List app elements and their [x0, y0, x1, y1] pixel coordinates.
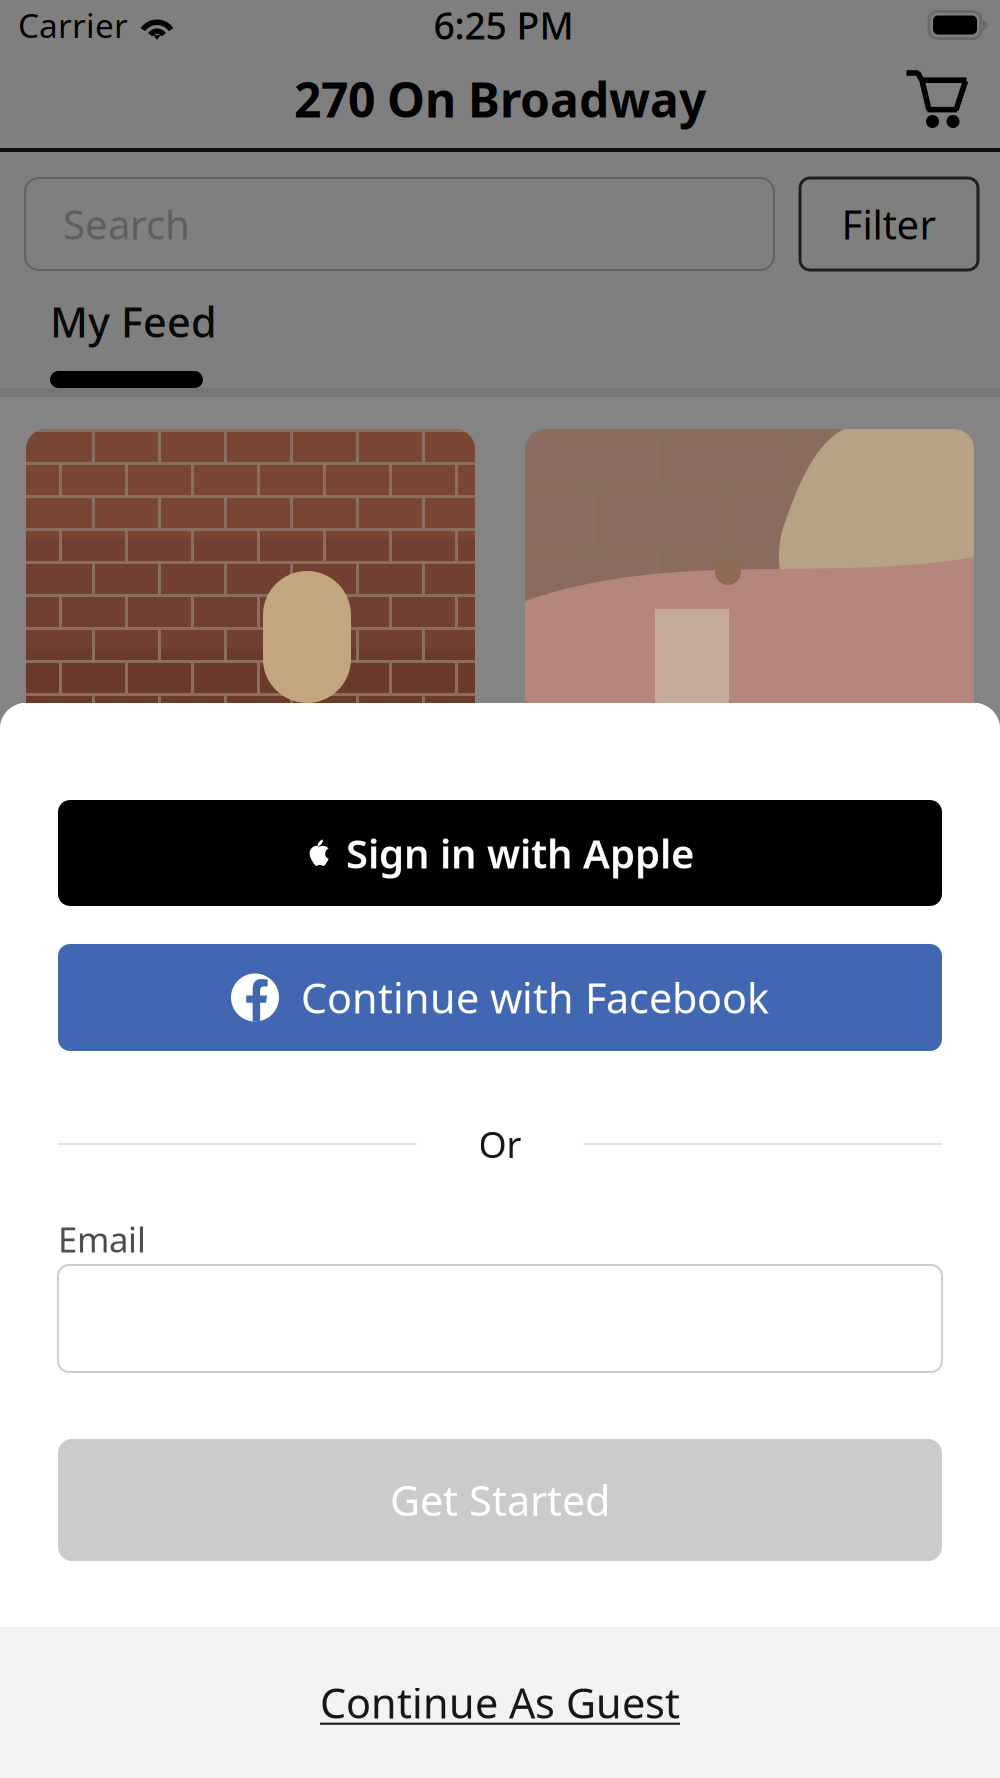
staticText: Filter: [841, 197, 936, 250]
staticText: Or: [478, 1120, 521, 1168]
staticText: 270 On Broadway: [294, 67, 706, 131]
staticText: Get Started: [390, 1473, 610, 1527]
staticText: Continue with Facebook: [301, 970, 769, 1025]
staticText: 6:25 PM: [433, 0, 573, 50]
staticText: Email: [58, 1216, 146, 1262]
staticText: Search: [63, 197, 190, 250]
staticText: Carrier: [18, 3, 128, 47]
staticText: Continue As Guest: [320, 1675, 680, 1730]
staticText: Sign in with Apple: [346, 826, 694, 879]
button[interactable]: Continue As Guest: [0, 1627, 1000, 1778]
button[interactable]: Continue with Facebook: [58, 944, 942, 1051]
staticText: My Feed: [50, 294, 217, 349]
button[interactable]: Sign in with Apple: [58, 800, 942, 906]
button[interactable]: Get Started: [58, 1439, 942, 1561]
